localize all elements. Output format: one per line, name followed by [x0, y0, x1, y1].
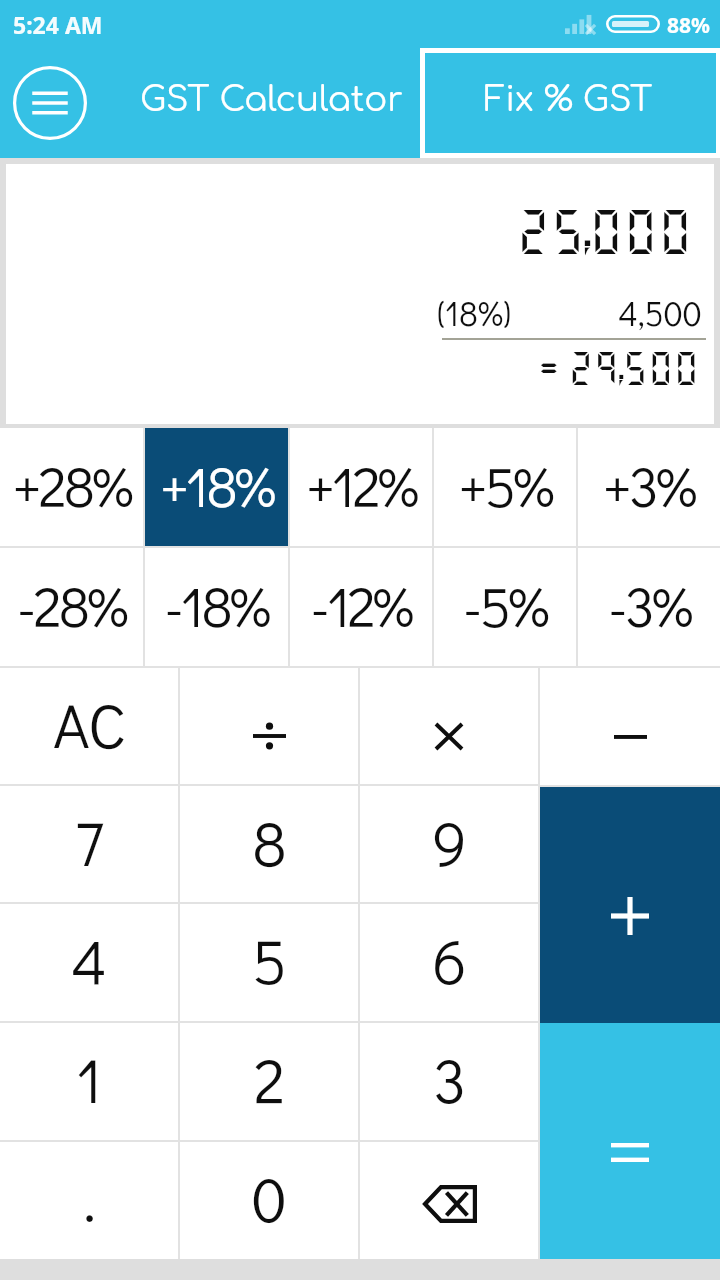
staticText: +12%	[306, 448, 417, 521]
staticText: +18%	[160, 448, 274, 521]
button[interactable]: Minus	[540, 668, 720, 785]
button[interactable]: Fix % GST	[420, 48, 720, 158]
staticText: -3%	[608, 568, 691, 641]
button[interactable]: AC	[0, 668, 178, 784]
staticText: -28%	[17, 568, 126, 641]
staticText: 9	[432, 801, 467, 882]
button[interactable]: 6	[360, 904, 538, 1021]
staticText: +28%	[13, 448, 131, 521]
button[interactable]: .	[0, 1142, 178, 1259]
button[interactable]: +5%	[434, 428, 576, 546]
staticText: 88%	[667, 11, 710, 40]
staticText: GST Calculator	[140, 81, 403, 119]
button[interactable]: +12%	[290, 428, 432, 546]
staticText: 25,000	[516, 203, 693, 259]
staticText: AC	[53, 683, 126, 764]
staticText: 7	[75, 801, 104, 882]
button[interactable]: +18%	[145, 428, 288, 546]
staticText: 8	[252, 801, 287, 882]
button[interactable]: 2	[180, 1023, 358, 1140]
staticText: 5	[252, 919, 287, 1000]
button[interactable]: 5	[180, 904, 358, 1021]
button[interactable]: -18%	[145, 548, 288, 666]
staticText: =	[536, 349, 562, 390]
staticText: 29,500	[568, 347, 700, 388]
staticText: -5%	[463, 568, 547, 641]
button[interactable]: Equals	[540, 1023, 720, 1259]
button[interactable]: Backspace	[360, 1142, 538, 1259]
button[interactable]: Divide	[180, 668, 358, 784]
staticText: Fix % GST	[484, 81, 653, 119]
staticText: -18%	[164, 568, 269, 641]
button[interactable]: 9	[360, 786, 538, 902]
staticText: +3%	[603, 448, 695, 521]
button[interactable]: Open navigation menu	[13, 66, 87, 140]
button[interactable]: 3	[360, 1023, 538, 1140]
staticText: 3	[433, 1038, 466, 1119]
staticText: (18%)	[437, 290, 511, 335]
button[interactable]: Multiply	[360, 668, 538, 784]
staticText: 1	[76, 1038, 102, 1119]
staticText: 4	[71, 919, 107, 1000]
staticText: 0	[252, 1157, 287, 1238]
button[interactable]: -3%	[578, 548, 720, 666]
staticText: -12%	[310, 568, 412, 641]
staticText: 2	[254, 1038, 285, 1119]
button[interactable]: 0	[180, 1142, 358, 1259]
button[interactable]: 8	[180, 786, 358, 902]
staticText: +5%	[459, 448, 552, 521]
button[interactable]: 7	[0, 786, 178, 902]
staticText: .	[83, 1157, 96, 1238]
staticText: 4,500	[618, 290, 702, 335]
button[interactable]: Plus	[540, 787, 720, 1023]
button[interactable]: -12%	[290, 548, 432, 666]
button[interactable]: 4	[0, 904, 178, 1021]
staticText: 6	[432, 919, 467, 1000]
staticText: 5:24 AM	[13, 9, 103, 40]
button[interactable]: +28%	[0, 428, 143, 546]
button[interactable]: 1	[0, 1023, 178, 1140]
button[interactable]: -5%	[434, 548, 576, 666]
button[interactable]: +3%	[578, 428, 720, 546]
button[interactable]: -28%	[0, 548, 143, 666]
